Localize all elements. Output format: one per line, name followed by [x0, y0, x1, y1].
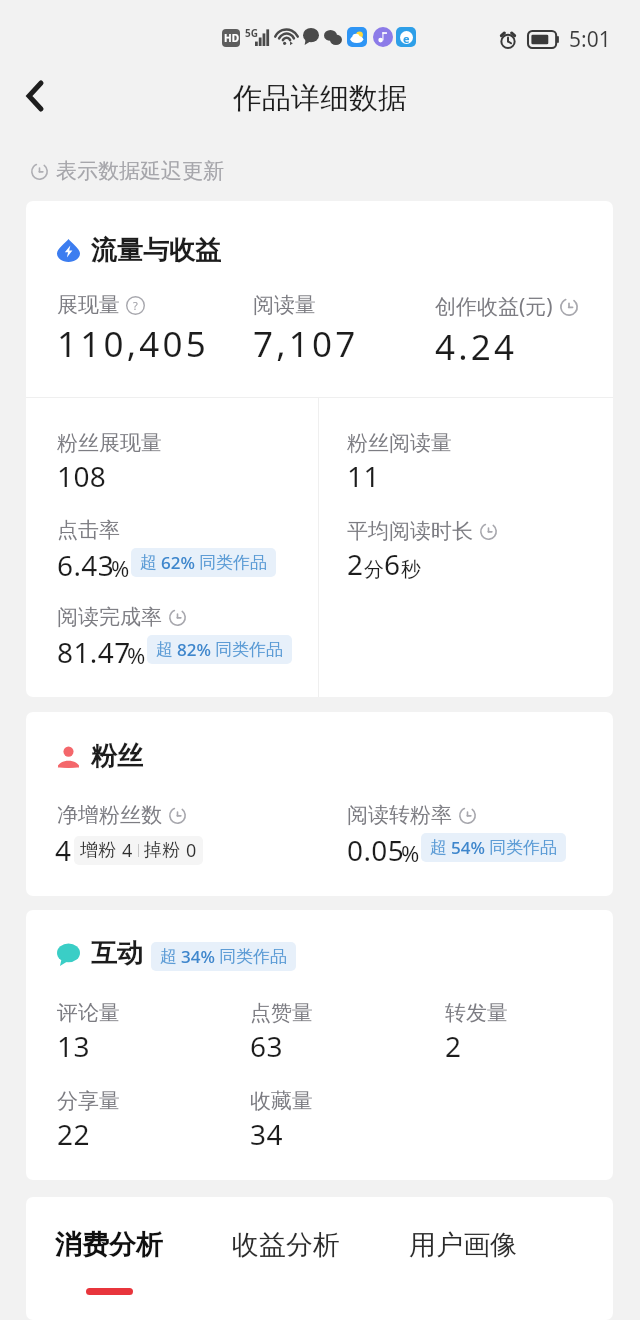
staticText: 22 [57, 1115, 90, 1153]
staticText: 同类作品 [489, 837, 557, 858]
staticText: HD [224, 31, 239, 45]
staticText: 掉粉 [144, 839, 180, 862]
staticText: ? [133, 298, 138, 313]
staticText: 阅读完成率 [57, 604, 162, 630]
staticText: 净增粉丝数 [57, 802, 162, 828]
staticText: 阅读量 [253, 292, 316, 318]
staticText: 同类作品 [219, 946, 287, 967]
staticText: 108 [57, 457, 107, 495]
staticText: 互动 [91, 937, 143, 970]
staticText: 11 [347, 457, 380, 495]
staticText: 4 [122, 838, 133, 863]
staticText: 阅读转粉率 [347, 802, 452, 828]
staticText: 超 [156, 639, 173, 660]
staticText: 收益分析 [232, 1228, 340, 1262]
staticText: 同类作品 [199, 552, 267, 573]
staticText: 转发量 [445, 1000, 508, 1026]
staticText: 平均阅读时长 [347, 518, 473, 544]
staticText: 粉丝 [91, 740, 143, 773]
staticText: 2 [445, 1027, 462, 1065]
staticText: e [403, 31, 410, 44]
staticText: 评论量 [57, 1000, 120, 1026]
staticText: 2 [347, 545, 364, 583]
staticText: 4 [55, 831, 72, 869]
staticText: 6.43 [57, 546, 115, 584]
staticText: 流量与收益 [91, 234, 221, 267]
staticText: 54% [451, 836, 485, 859]
staticText: 62% [161, 551, 195, 574]
staticText: % [401, 838, 420, 868]
staticText: 0 [186, 838, 197, 863]
staticText: 消费分析 [55, 1228, 163, 1262]
staticText: 点赞量 [250, 1000, 313, 1026]
staticText: % [127, 640, 146, 670]
staticText: 用户画像 [409, 1228, 517, 1262]
staticText: % [111, 553, 130, 583]
staticText: 4.24 [435, 323, 518, 371]
staticText: 粉丝展现量 [57, 430, 162, 456]
staticText: 点击率 [57, 517, 120, 543]
staticText: 超 [140, 552, 157, 573]
staticText: 秒 [401, 557, 421, 582]
staticText: 6 [384, 545, 401, 583]
staticText: 34% [181, 945, 215, 968]
button[interactable]: Back [7, 68, 63, 124]
staticText: 81.47 [57, 633, 131, 671]
staticText: 收藏量 [250, 1088, 313, 1114]
button[interactable]: 收益分析 [232, 1228, 340, 1288]
staticText: 超 [160, 946, 177, 967]
staticText: 展现量 [57, 292, 120, 318]
staticText: 13 [57, 1027, 90, 1065]
staticText: 7,107 [253, 320, 359, 368]
staticText: 110,405 [57, 320, 209, 368]
button[interactable]: 消费分析 [55, 1228, 163, 1295]
staticText: 增粉 [80, 839, 116, 862]
staticText: 分 [364, 557, 384, 582]
staticText: 82% [177, 638, 211, 661]
button[interactable]: 用户画像 [409, 1228, 517, 1288]
staticText: 5G [245, 26, 258, 40]
staticText: 63 [250, 1027, 283, 1065]
staticText: 作品详细数据 [233, 80, 407, 117]
staticText: 创作收益(元) [435, 292, 553, 321]
staticText: 表示数据延迟更新 [56, 158, 224, 184]
staticText: 同类作品 [215, 639, 283, 660]
staticText: 34 [250, 1115, 283, 1153]
staticText: 分享量 [57, 1088, 120, 1114]
staticText: 超 [430, 837, 447, 858]
staticText: 5:01 [569, 25, 611, 54]
staticText: 粉丝阅读量 [347, 430, 452, 456]
staticText: 0.05 [347, 831, 405, 869]
